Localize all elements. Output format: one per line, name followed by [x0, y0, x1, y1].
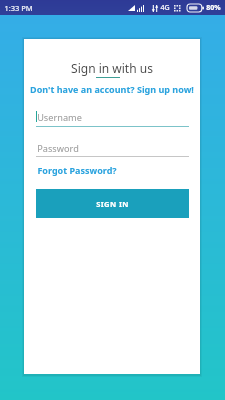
- button[interactable]: SIGN IN: [36, 189, 189, 218]
- button[interactable]: Forgot Password?: [37, 163, 117, 177]
- staticText: SIGN IN: [96, 199, 129, 209]
- button[interactable]: [36, 108, 189, 126]
- staticText: 80%: [206, 3, 221, 13]
- staticText: Sign in with us: [71, 60, 153, 76]
- staticText: Username: [37, 111, 82, 124]
- staticText: 1:33 PM: [4, 3, 33, 13]
- button[interactable]: Don't have an account? Sign up now!: [24, 82, 200, 95]
- button[interactable]: [36, 142, 189, 159]
- staticText: 4G: [160, 3, 170, 13]
- staticText: Forgot Password?: [37, 164, 117, 176]
- staticText: Password: [37, 142, 79, 155]
- staticText: Don't have an account? Sign up now!: [30, 83, 194, 95]
